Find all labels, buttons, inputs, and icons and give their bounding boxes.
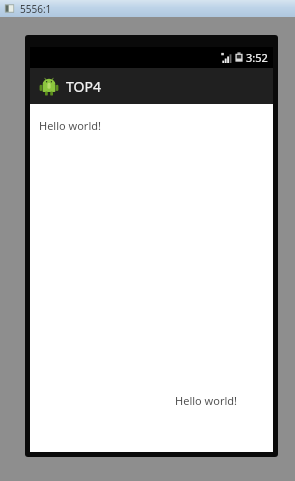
staticText: Hello world! [39, 118, 101, 133]
staticText: TOP4 [66, 77, 101, 96]
button[interactable]: TOP4 [30, 68, 273, 104]
staticText: Hello world! [175, 393, 237, 408]
staticText: 5556:1 [20, 2, 52, 16]
staticText: 3:52 [246, 50, 268, 65]
